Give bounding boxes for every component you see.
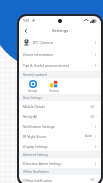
staticText: Notify All: [23, 114, 38, 118]
staticText: IR Night Vision: [23, 134, 46, 138]
button[interactable]: Mobile Details: [19, 101, 101, 111]
staticText: Notification Settings: [23, 124, 55, 128]
staticText: Settings: [52, 28, 69, 34]
button[interactable]: Notify All: [19, 111, 101, 121]
staticText: Tips & Useful announcement: [23, 63, 70, 68]
staticText: Advanced Settings: [23, 153, 49, 157]
button[interactable]: Device information: [19, 49, 101, 60]
staticText: Device information: [23, 52, 54, 57]
staticText: IPC Camera: [33, 40, 53, 45]
button[interactable]: Offline notification: [19, 175, 101, 183]
staticText: Offline notification: [23, 178, 52, 182]
staticText: Auto: [85, 134, 92, 138]
button[interactable]: Storage: [24, 80, 42, 93]
staticText: Services: [49, 89, 59, 93]
button[interactable]: Display Settings: [19, 141, 101, 151]
button[interactable]: IPC Camera: [19, 36, 101, 49]
button[interactable]: IR Night Vision: [19, 131, 101, 141]
button[interactable]: Notification Settings: [19, 121, 101, 131]
button[interactable]: Services: [45, 80, 63, 93]
staticText: 9:41: [23, 19, 30, 23]
staticText: Mobile Details: [23, 104, 46, 108]
staticText: Storage: [28, 89, 38, 93]
button[interactable]: Back: [22, 27, 29, 34]
staticText: Offline Notification: [23, 170, 49, 174]
staticText: Recently updated: [23, 73, 47, 77]
staticText: Basic Settings: [23, 96, 42, 100]
button[interactable]: Tips & Useful announcement: [19, 60, 101, 71]
button[interactable]: Detection Alarm Settings: [19, 158, 101, 168]
staticText: Display Settings: [23, 144, 48, 148]
staticText: Detection Alarm Settings: [23, 161, 62, 165]
